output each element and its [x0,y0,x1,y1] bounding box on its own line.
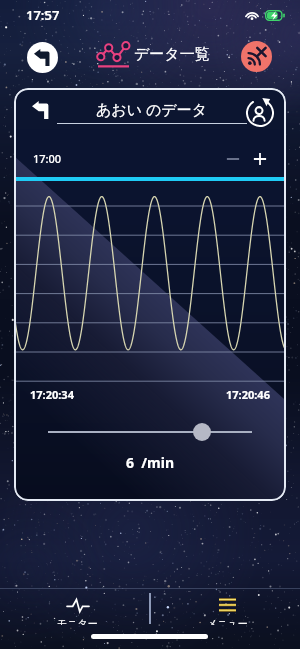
staticText: 17:20:46 [226,387,270,402]
staticText: データ一覧 [134,45,210,64]
button[interactable]: 戻る [27,42,58,73]
staticText: 17:57 [26,6,60,24]
button[interactable]: メニュー [150,589,300,625]
button[interactable]: 拡大 [251,150,269,168]
staticText: モニター [57,617,98,625]
button[interactable]: 戻る [29,98,53,122]
button[interactable]: ユーザー切替 [246,99,274,127]
button[interactable]: 速度スライダー [193,423,211,441]
staticText: メニュー [207,617,248,625]
staticText: あおい のデータ [96,99,208,119]
staticText: 17:00 [33,151,62,166]
staticText: 6 /min [126,453,175,472]
button[interactable]: 縮小 [224,150,242,168]
button[interactable]: モニター [0,589,150,625]
button[interactable]: 接続なし [241,41,272,72]
staticText: 17:20:34 [30,387,74,402]
